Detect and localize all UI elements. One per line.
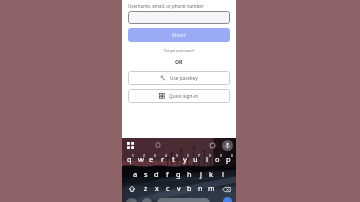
staticText: z [144,184,148,194]
staticText: 3 [154,154,156,158]
staticText: a [133,169,138,179]
staticText: y [183,154,187,164]
button[interactable]: o [212,152,223,166]
button[interactable]: Shift [122,182,141,196]
button[interactable]: Enter [223,197,232,202]
staticText: 9 [220,154,222,158]
staticText: h [187,169,192,179]
staticText: j [200,169,202,179]
staticText: Username, email, or phone number [128,3,204,9]
staticText: n [198,184,203,194]
button[interactable]: h [184,167,195,181]
staticText: m [208,184,215,194]
staticText: q [127,154,132,164]
button[interactable]: f [162,167,173,181]
button[interactable]: x [151,182,162,196]
button[interactable]: Next [128,28,230,42]
button[interactable]: a [130,167,140,181]
staticText: Use passkey [170,75,198,82]
button[interactable]: q [124,152,135,166]
button[interactable]: b [184,182,195,196]
staticText: 5 [176,154,178,158]
button[interactable]: Voice input [222,140,233,151]
button[interactable]: t [168,152,179,166]
button[interactable]: Clipboard [155,142,161,148]
staticText: g [176,169,181,179]
staticText: e [149,154,154,164]
button[interactable]: ?123 [126,198,137,202]
staticText: 7 [198,154,200,158]
button[interactable]: Keyboard apps [126,141,135,150]
staticText: OR [175,58,183,65]
button[interactable]: k [206,167,217,181]
button[interactable]: g [173,167,184,181]
staticText: x [155,184,159,194]
staticText: Forgot username? [164,48,195,53]
button[interactable]: j [195,167,206,181]
staticText: Next [172,31,186,39]
button[interactable]: r [157,152,168,166]
button[interactable]: i [201,152,212,166]
staticText: o [215,154,220,164]
button[interactable]: m [206,182,217,196]
staticText: i [206,154,208,164]
staticText: 1 [132,154,134,158]
button[interactable]: d [151,167,162,181]
staticText: b [187,184,192,194]
button[interactable]: e [146,152,157,166]
staticText: c [166,184,170,194]
button[interactable]: Space [157,198,210,202]
staticText: p [226,154,231,164]
button[interactable]: Use passkey [128,71,230,85]
staticText: s [144,169,148,179]
button[interactable]: c [162,182,173,196]
button[interactable]: p [223,152,234,166]
staticText: v [177,184,181,194]
staticText: l [222,169,224,179]
staticText: 8 [209,154,211,158]
staticText: k [209,169,214,179]
button[interactable]: v [173,182,184,196]
button[interactable]: Quick sign-in [128,89,230,103]
button[interactable]: z [141,182,151,196]
staticText: 0 [231,154,233,158]
staticText: Quick sign-in [169,93,199,100]
staticText: d [154,169,159,179]
staticText: 4 [165,154,167,158]
button[interactable]: w [135,152,146,166]
button[interactable]: Emoji keyboard [142,198,152,202]
staticText: t [172,154,175,164]
button[interactable]: Forgot username? [122,46,236,55]
button[interactable]: l [217,167,228,181]
staticText: 6 [187,154,189,158]
button[interactable] [128,11,230,24]
button[interactable]: Backspace [217,182,236,196]
staticText: r [161,154,165,164]
staticText: ?123 [128,201,136,202]
button[interactable]: Stickers [209,142,216,149]
button[interactable]: s [140,167,151,181]
staticText: f [166,169,169,179]
button[interactable]: y [179,152,190,166]
staticText: u [193,154,198,164]
staticText: w [138,154,144,164]
button[interactable]: u [190,152,201,166]
staticText: 2 [143,154,145,158]
button[interactable]: n [195,182,206,196]
